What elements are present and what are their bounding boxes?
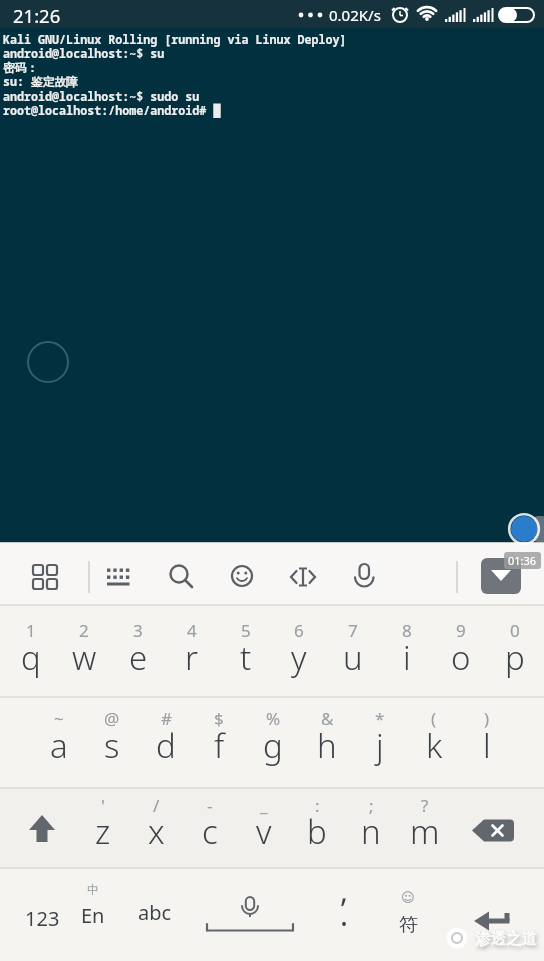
button[interactable]: n xyxy=(344,808,398,854)
staticText: 1 xyxy=(26,619,36,642)
staticText: Kali GNU/Linux Rolling [running via Linu… xyxy=(3,31,347,119)
button[interactable] xyxy=(478,555,524,597)
staticText: r xyxy=(185,635,199,680)
button[interactable]: ~ xyxy=(32,703,86,733)
staticText: 0.02K/s xyxy=(329,5,381,25)
staticText: 8 xyxy=(402,619,412,642)
staticText: 9 xyxy=(456,619,466,642)
staticText: & xyxy=(321,707,334,730)
button[interactable] xyxy=(222,558,262,596)
button[interactable]: En xyxy=(66,892,120,938)
button[interactable]: p xyxy=(488,634,542,680)
button[interactable]: 0 xyxy=(488,615,542,645)
staticText: - xyxy=(207,794,213,817)
button[interactable]: i xyxy=(380,634,434,680)
button[interactable]: # xyxy=(139,703,193,733)
staticText: l xyxy=(483,723,491,768)
button[interactable]: b xyxy=(290,808,344,854)
button[interactable]: abc xyxy=(125,889,185,935)
button[interactable]: q xyxy=(4,634,58,680)
button[interactable]: 1 xyxy=(4,615,58,645)
button[interactable] xyxy=(464,904,518,950)
button[interactable]: . xyxy=(317,891,371,937)
button[interactable]: ( xyxy=(407,703,461,733)
button[interactable]: m xyxy=(398,808,452,854)
button[interactable]: e xyxy=(111,634,165,680)
button[interactable]: 9 xyxy=(434,615,488,645)
button[interactable]: g xyxy=(246,722,300,768)
staticText: , xyxy=(340,870,349,911)
button[interactable]: t xyxy=(219,634,273,680)
button[interactable]: x xyxy=(129,808,183,854)
button[interactable]: ? xyxy=(398,790,452,820)
button[interactable] xyxy=(344,558,384,596)
staticText: 4 xyxy=(187,619,197,642)
button[interactable] xyxy=(25,558,65,596)
button[interactable] xyxy=(0,28,544,542)
staticText: u xyxy=(343,635,363,680)
button[interactable]: 3 xyxy=(111,615,165,645)
button[interactable]: - xyxy=(183,790,237,820)
button[interactable]: & xyxy=(300,703,354,733)
staticText: ; xyxy=(369,794,374,817)
button[interactable]: 5 xyxy=(219,615,273,645)
button[interactable]: y xyxy=(272,634,326,680)
button[interactable]: $ xyxy=(192,703,246,733)
staticText: e xyxy=(129,635,148,680)
button[interactable]: w xyxy=(57,634,111,680)
button[interactable]: v xyxy=(237,808,291,854)
button[interactable] xyxy=(200,885,300,951)
button[interactable]: _ xyxy=(237,790,291,820)
staticText: 123 xyxy=(25,905,60,932)
staticText: f xyxy=(214,723,225,768)
button[interactable]: a xyxy=(32,722,86,768)
staticText: / xyxy=(153,794,160,817)
button[interactable]: j xyxy=(353,722,407,768)
button[interactable] xyxy=(283,558,323,596)
button[interactable]: k xyxy=(407,722,461,768)
button[interactable]: : xyxy=(290,790,344,820)
button[interactable]: c xyxy=(183,808,237,854)
button[interactable]: % xyxy=(246,703,300,733)
staticText: 中 xyxy=(87,882,99,897)
button[interactable]: / xyxy=(129,790,183,820)
staticText: $ xyxy=(214,707,224,730)
button[interactable]: 中 xyxy=(66,879,120,899)
button[interactable]: , xyxy=(317,867,371,913)
staticText: s xyxy=(104,723,120,768)
button[interactable]: 2 xyxy=(57,615,111,645)
button[interactable]: ☺ xyxy=(381,887,435,907)
button[interactable]: z xyxy=(76,808,130,854)
button[interactable] xyxy=(161,558,201,596)
button[interactable]: s xyxy=(85,722,139,768)
staticText: y xyxy=(291,635,307,680)
button[interactable] xyxy=(506,511,542,547)
button[interactable]: 4 xyxy=(165,615,219,645)
button[interactable]: * xyxy=(353,703,407,733)
button[interactable]: 符 xyxy=(381,902,435,948)
button[interactable]: ' xyxy=(76,790,130,820)
button[interactable]: f xyxy=(192,722,246,768)
button[interactable]: d xyxy=(139,722,193,768)
button[interactable]: u xyxy=(326,634,380,680)
staticText: m xyxy=(410,809,440,854)
staticText: a xyxy=(50,723,68,768)
button[interactable]: o xyxy=(434,634,488,680)
button[interactable] xyxy=(18,808,68,854)
button[interactable]: 123 xyxy=(12,895,72,941)
button[interactable]: 7 xyxy=(326,615,380,645)
staticText: w xyxy=(72,635,97,680)
button[interactable] xyxy=(466,808,522,854)
button[interactable]: ; xyxy=(344,790,398,820)
button[interactable] xyxy=(100,558,140,596)
button[interactable]: h xyxy=(300,722,354,768)
button[interactable]: ) xyxy=(460,703,514,733)
button[interactable]: r xyxy=(165,634,219,680)
button[interactable]: @ xyxy=(85,703,139,733)
button[interactable]: 6 xyxy=(272,615,326,645)
staticText: : xyxy=(315,794,320,817)
staticText: @ xyxy=(104,707,120,730)
button[interactable]: 8 xyxy=(380,615,434,645)
button[interactable]: l xyxy=(460,722,514,768)
staticText: # xyxy=(161,707,172,730)
